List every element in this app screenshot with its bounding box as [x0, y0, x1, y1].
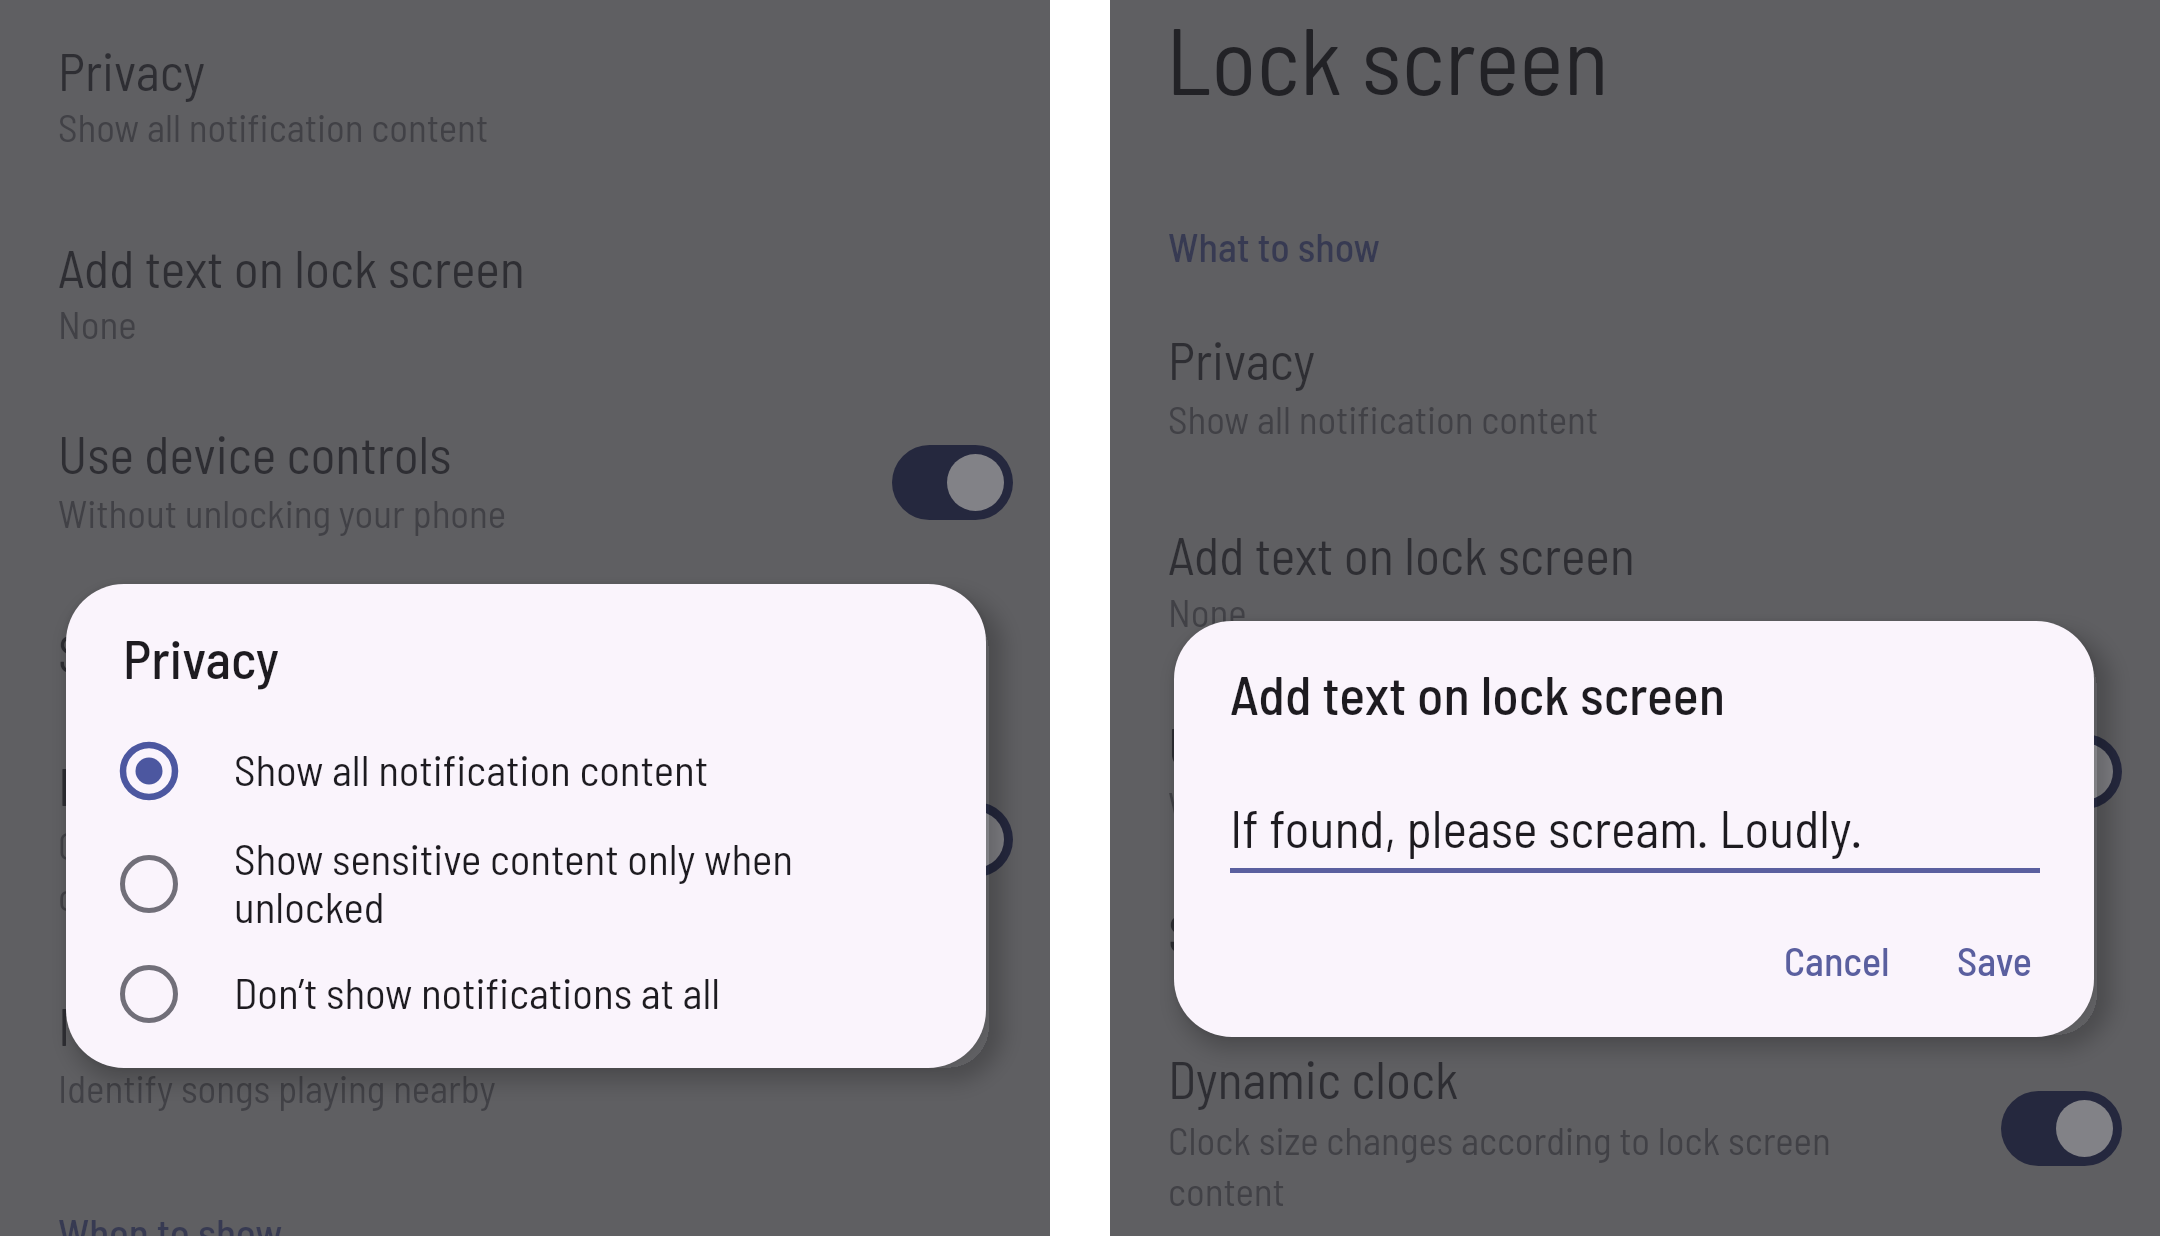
staticText: Lock screen	[1166, 1, 1609, 114]
staticText: Cancel	[1784, 936, 1890, 984]
staticText: Now Playing	[58, 994, 301, 1056]
staticText: Show wallet	[58, 621, 296, 683]
staticText: Add text on lock screen	[1230, 661, 1725, 726]
button[interactable]	[1108, 1040, 2098, 1220]
staticText: Clock size changes according to lock scr…	[1168, 1116, 1831, 1163]
button[interactable]	[115, 737, 183, 805]
staticText: Show all notification content	[234, 743, 709, 795]
button[interactable]	[2001, 1091, 2122, 1166]
staticText: Use device controls	[1168, 714, 1562, 776]
staticText: Show wallet	[1168, 901, 1406, 963]
staticText: When to show	[58, 1207, 283, 1236]
staticText: Control connected devices	[58, 821, 458, 868]
button[interactable]	[66, 730, 986, 815]
staticText: Privacy	[58, 39, 205, 101]
button[interactable]	[1108, 320, 2160, 480]
button[interactable]	[115, 960, 183, 1028]
staticText: None	[58, 300, 137, 347]
button[interactable]	[115, 850, 183, 918]
staticText: Privacy	[123, 625, 280, 690]
button[interactable]	[0, 1050, 1050, 1160]
staticText: Dynamic clock	[1168, 1047, 1459, 1109]
button[interactable]	[1930, 915, 2060, 1010]
staticText: Show sensitive content only when	[234, 832, 793, 884]
staticText: Add text on lock screen	[58, 236, 525, 298]
button[interactable]	[0, 30, 1050, 190]
staticText: What to show	[1168, 222, 1380, 270]
staticText: Use device controls	[58, 422, 452, 484]
staticText: Identify songs playing nearby	[58, 1064, 496, 1111]
button[interactable]	[66, 950, 986, 1040]
button[interactable]	[0, 228, 1050, 388]
staticText: Privacy	[1168, 328, 1315, 390]
staticText: content	[1168, 1167, 1285, 1214]
staticText: Display controls	[58, 754, 378, 816]
staticText: Show all notification content	[58, 103, 489, 150]
staticText: None	[1168, 588, 1247, 635]
button[interactable]	[2001, 734, 2122, 809]
staticText: unlocked	[234, 880, 385, 932]
button[interactable]	[1230, 780, 2040, 873]
button[interactable]	[892, 802, 1013, 877]
button[interactable]	[892, 445, 1013, 520]
staticText: Without unlocking your phone	[58, 489, 506, 536]
staticText: Show all notification content	[1168, 395, 1599, 442]
button[interactable]	[1755, 915, 1920, 1010]
staticText: If found, please scream. Loudly.	[1230, 796, 1863, 858]
staticText: Don’t show notifications at all	[234, 966, 721, 1018]
button[interactable]	[1108, 515, 2160, 675]
button[interactable]	[66, 838, 986, 933]
staticText: Add text on lock screen	[1168, 523, 1635, 585]
staticText: Save	[1957, 936, 2032, 984]
button[interactable]	[0, 414, 880, 574]
staticText: on your lock screen	[58, 872, 351, 919]
staticText: Without unlocking your phone	[1168, 781, 1616, 828]
